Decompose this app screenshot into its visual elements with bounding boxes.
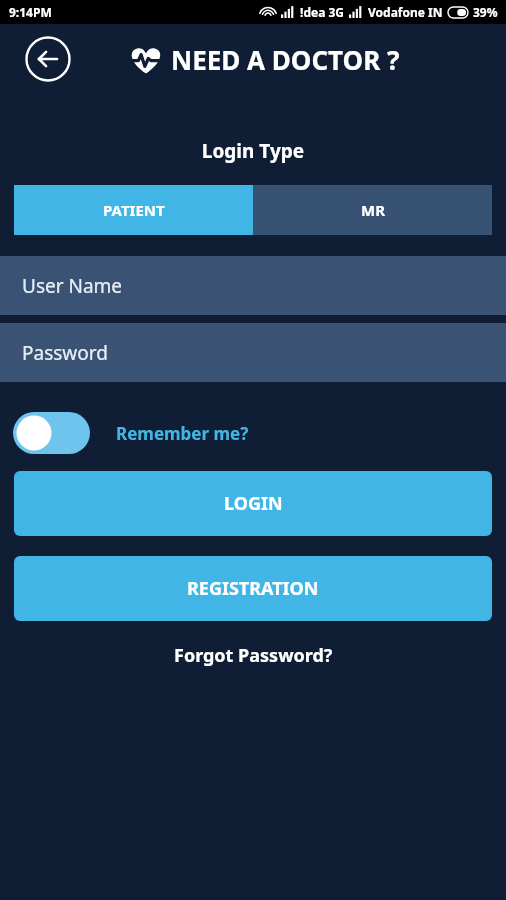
staticText: PATIENT [103, 200, 165, 220]
staticText: Login Type [0, 138, 506, 164]
button[interactable]: Remember me? [116, 422, 249, 445]
button[interactable]: PATIENT [14, 185, 253, 235]
staticText: !dea 3G [300, 4, 344, 20]
button[interactable]: MR [253, 185, 492, 235]
staticText: User Name [22, 273, 123, 299]
staticText: LOGIN [224, 491, 283, 516]
staticText: Password [22, 340, 108, 366]
staticText: 39% [473, 4, 498, 20]
staticText: MR [361, 200, 385, 220]
button[interactable]: REGISTRATION [14, 556, 492, 621]
staticText: Vodafone IN [368, 4, 443, 20]
button[interactable]: Remember me toggle [13, 412, 90, 454]
button[interactable]: Password [0, 323, 506, 382]
button[interactable]: Back [25, 36, 71, 82]
staticText: 9:14PM [9, 4, 52, 20]
staticText: REGISTRATION [187, 576, 319, 601]
button[interactable]: User Name [0, 256, 506, 315]
button[interactable]: Forgot Password? [162, 639, 345, 672]
staticText: NEED A DOCTOR ? [171, 42, 400, 77]
button[interactable]: LOGIN [14, 471, 492, 536]
